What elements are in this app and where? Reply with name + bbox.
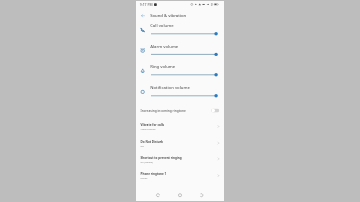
staticText: Shortcut to prevent ringing: [141, 155, 182, 159]
staticText: Increasing incoming ringtone: [141, 108, 186, 113]
staticText: Phone ringtone 1: [141, 172, 166, 176]
staticText: Call volume: [150, 23, 174, 28]
staticText: On (Vibrate): [141, 160, 153, 163]
staticText: Alarm volume: [150, 43, 178, 49]
staticText: Vibrate for calls: [141, 123, 164, 127]
staticText: Always vibrate: [141, 128, 156, 131]
staticText: Sound & vibration: [150, 13, 186, 18]
staticText: Do Not Disturb: [141, 140, 163, 144]
button[interactable]: Back: [139, 12, 146, 19]
button[interactable]: Recents: [152, 190, 164, 201]
staticText: Notification volume: [150, 85, 190, 90]
button[interactable]: Increasing incoming ringtone: [136, 103, 224, 118]
button[interactable]: Home: [174, 190, 186, 201]
staticText: Ring volume: [150, 64, 175, 70]
staticText: 9:17 PM: [140, 2, 153, 7]
staticText: Rondo: [141, 177, 147, 180]
button[interactable]: Back: [196, 190, 207, 201]
staticText: Off: [141, 144, 144, 147]
